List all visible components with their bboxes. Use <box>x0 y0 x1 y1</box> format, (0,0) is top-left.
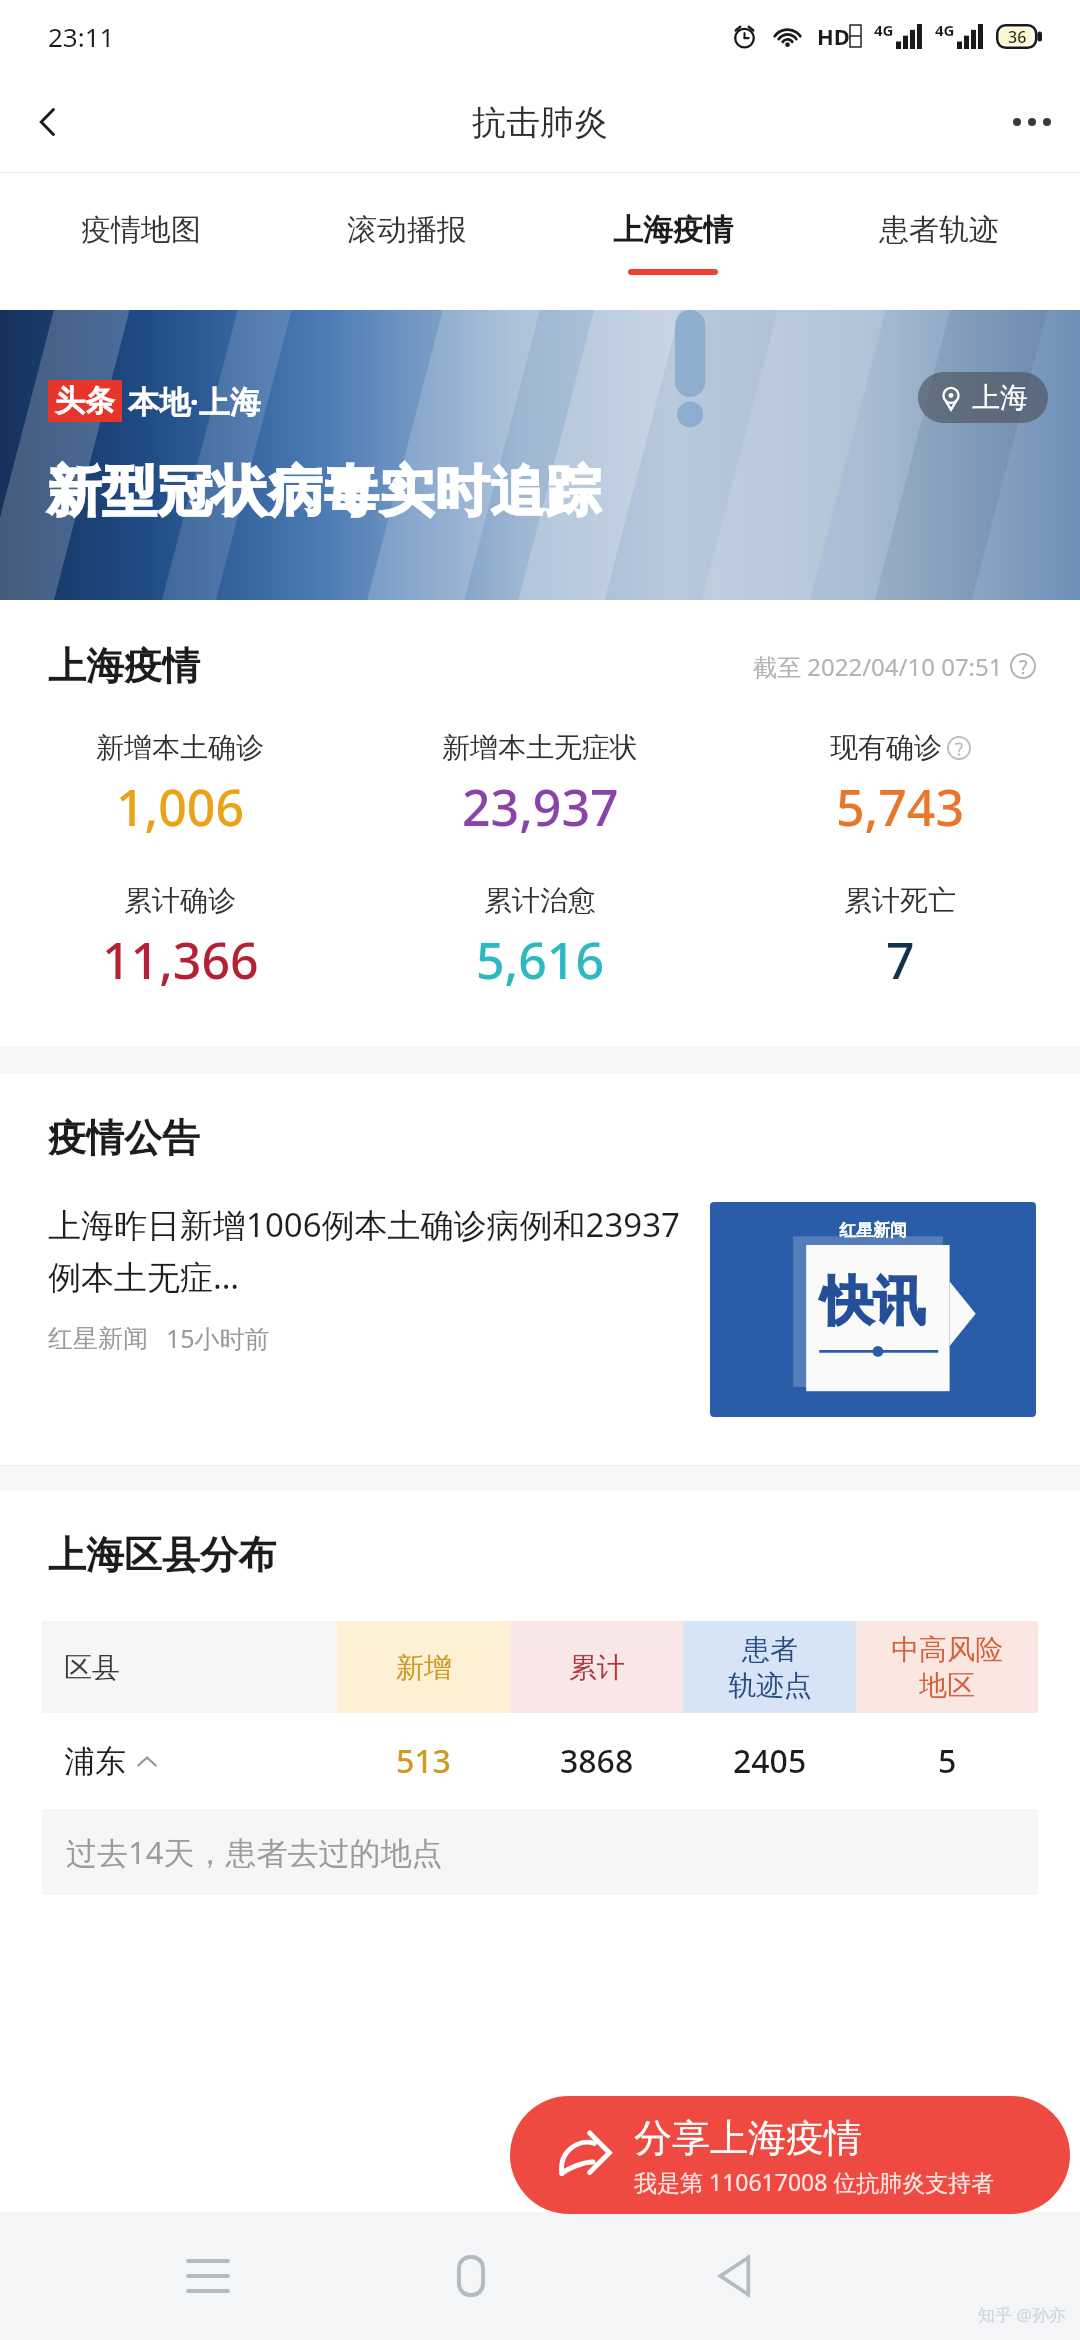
button[interactable]: 累计 <box>510 1621 683 1713</box>
staticText: 本地·上海 <box>128 380 261 422</box>
staticText: 上海 <box>972 380 1028 415</box>
button[interactable]: 上海疫情 <box>540 173 806 310</box>
staticText: 新增本土确诊 <box>96 730 264 765</box>
staticText: 头条 <box>55 382 115 420</box>
button[interactable]: 累计死亡 <box>720 883 1080 994</box>
staticText: 累计 <box>569 1650 625 1685</box>
button[interactable]: 现有确诊 <box>720 730 1080 841</box>
staticText: 7 <box>886 926 915 994</box>
staticText: 快讯 <box>821 1269 925 1335</box>
staticText: 抗击肺炎 <box>472 101 608 144</box>
button[interactable]: 新增本土无症状 <box>360 730 720 841</box>
button[interactable]: 分享上海疫情 <box>510 2096 1070 2214</box>
staticText: 浦东 <box>64 1742 126 1781</box>
button[interactable]: Back <box>679 2221 789 2331</box>
staticText: 累计确诊 <box>124 883 236 918</box>
staticText: 4G <box>874 20 894 40</box>
staticText: 2405 <box>733 1739 807 1783</box>
staticText: 滚动播报 <box>347 211 467 249</box>
staticText: 5 <box>938 1739 957 1783</box>
button[interactable]: 头条 <box>0 310 1080 600</box>
button[interactable]: More options <box>984 74 1080 170</box>
staticText: 红星新闻 <box>839 1220 907 1241</box>
staticText: 新增 <box>396 1650 452 1685</box>
button[interactable]: 新增 <box>337 1621 510 1713</box>
staticText: 现有确诊 <box>830 730 942 765</box>
staticText: 累计治愈 <box>484 883 596 918</box>
button[interactable]: Back <box>0 74 96 170</box>
button[interactable]: 区县 <box>42 1621 337 1713</box>
button[interactable]: 累计确诊 <box>0 883 360 994</box>
staticText: 疫情公告 <box>48 1114 200 1162</box>
staticText: HD <box>817 21 850 51</box>
staticText: 23,937 <box>462 773 619 841</box>
button[interactable]: 浦东 <box>42 1713 1038 1809</box>
button[interactable]: 上海昨日新增1006例本土确诊病例和23937例本土无症… <box>0 1202 1080 1417</box>
staticText: 11,366 <box>102 926 259 994</box>
staticText: 5,743 <box>836 773 965 841</box>
staticText: 15小时前 <box>166 1321 270 1355</box>
button[interactable]: 患者 轨迹点 <box>683 1621 856 1713</box>
staticText: 疫情地图 <box>81 211 201 249</box>
button[interactable]: 疫情地图 <box>8 173 274 310</box>
button[interactable]: Home <box>416 2221 526 2331</box>
staticText: 36 <box>1008 26 1027 48</box>
staticText: 红星新闻 <box>48 1323 148 1354</box>
button[interactable]: 上海 <box>918 372 1048 423</box>
button[interactable]: Info about update time <box>1010 653 1036 679</box>
staticText: 分享上海疫情 <box>634 2114 862 2162</box>
staticText: 截至 2022/04/10 07:51 <box>753 650 1003 683</box>
staticText: 患者轨迹 <box>879 211 999 249</box>
staticText: 上海疫情 <box>613 211 733 249</box>
staticText: 累计死亡 <box>844 883 956 918</box>
button[interactable]: 滚动播报 <box>274 173 540 310</box>
staticText: 新型冠状病毒实时追踪 <box>46 458 601 526</box>
button[interactable]: 患者轨迹 <box>806 173 1072 310</box>
staticText: 上海昨日新增1006例本土确诊病例和23937例本土无症… <box>48 1202 684 1299</box>
staticText: 3868 <box>560 1739 634 1783</box>
button[interactable]: 中高风险 地区 <box>856 1621 1038 1713</box>
staticText: 5,616 <box>476 926 605 994</box>
button[interactable]: 累计治愈 <box>360 883 720 994</box>
staticText: 中高风险 地区 <box>891 1632 1003 1703</box>
staticText: 4G <box>935 20 955 40</box>
staticText: 上海疫情 <box>48 642 200 690</box>
staticText: 上海区县分布 <box>48 1531 276 1579</box>
staticText: 区县 <box>64 1650 120 1685</box>
staticText: 我是第 110617008 位抗肺炎支持者 <box>634 2166 995 2197</box>
staticText: 新增本土无症状 <box>442 730 638 765</box>
staticText: 知乎 @孙亦 <box>978 2303 1066 2326</box>
staticText: 患者 轨迹点 <box>728 1632 812 1703</box>
staticText: 1,006 <box>116 773 245 841</box>
staticText: 23:11 <box>48 19 115 54</box>
button[interactable]: Recent apps <box>153 2221 263 2331</box>
button[interactable]: 新增本土确诊 <box>0 730 360 841</box>
staticText: 513 <box>396 1739 451 1783</box>
staticText: 过去14天，患者去过的地点 <box>66 1831 443 1873</box>
